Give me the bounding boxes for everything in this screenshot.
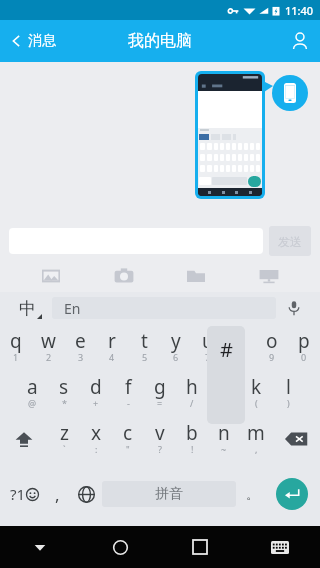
- staticText: 5: [142, 351, 148, 363]
- staticText: @: [28, 397, 37, 409]
- button[interactable]: q: [0, 324, 32, 370]
- button[interactable]: v: [144, 416, 176, 462]
- button[interactable]: w: [32, 324, 64, 370]
- staticText: z: [60, 420, 69, 446]
- button[interactable]: 中: [8, 292, 52, 324]
- button[interactable]: x: [80, 416, 112, 462]
- staticText: d: [90, 374, 102, 400]
- staticText: #: [220, 336, 233, 363]
- staticText: c: [123, 420, 133, 446]
- button[interactable]: Home: [80, 526, 160, 568]
- button[interactable]: Computer: [247, 260, 291, 292]
- button[interactable]: o: [256, 324, 288, 370]
- staticText: e: [75, 328, 86, 354]
- button[interactable]: 。: [236, 462, 268, 526]
- button[interactable]: a: [16, 370, 48, 416]
- staticText: u: [202, 328, 214, 354]
- staticText: o: [266, 328, 278, 354]
- staticText: 发送: [278, 234, 302, 249]
- staticText: w: [41, 328, 56, 354]
- button[interactable]: Gallery: [29, 260, 73, 292]
- staticText: 3: [78, 351, 84, 363]
- button[interactable]: 拼音: [102, 481, 236, 507]
- button[interactable]: k: [240, 370, 272, 416]
- button[interactable]: Device avatar: [272, 75, 308, 111]
- staticText: k: [251, 374, 262, 400]
- staticText: r: [108, 328, 116, 354]
- staticText: s: [59, 374, 69, 400]
- staticText: 1: [13, 351, 19, 363]
- button[interactable]: Backspace: [272, 416, 320, 462]
- button[interactable]: Camera: [102, 260, 146, 292]
- button[interactable]: m: [240, 416, 272, 462]
- staticText: *: [62, 397, 67, 409]
- staticText: v: [155, 420, 165, 446]
- button[interactable]: En: [52, 297, 276, 319]
- button[interactable]: h: [176, 370, 208, 416]
- button[interactable]: Change language: [70, 462, 102, 526]
- staticText: -: [127, 397, 130, 409]
- button[interactable]: n: [208, 416, 240, 462]
- staticText: !: [191, 443, 194, 455]
- staticText: /: [190, 397, 194, 409]
- button[interactable]: Hide keyboard: [0, 526, 80, 568]
- staticText: 中: [19, 298, 36, 319]
- button[interactable]: z: [48, 416, 80, 462]
- button[interactable]: Files: [174, 260, 218, 292]
- button[interactable]: Recent apps: [160, 526, 240, 568]
- button[interactable]: b: [176, 416, 208, 462]
- button[interactable]: l: [272, 370, 304, 416]
- staticText: 2: [46, 351, 52, 363]
- button[interactable]: f: [112, 370, 144, 416]
- button[interactable]: ,: [45, 462, 70, 526]
- staticText: 拼音: [155, 485, 183, 503]
- staticText: q: [10, 328, 22, 354]
- button[interactable]: e: [64, 324, 96, 370]
- staticText: l: [286, 374, 291, 400]
- button[interactable]: d: [80, 370, 112, 416]
- button[interactable]: y: [160, 324, 192, 370]
- staticText: p: [298, 328, 310, 354]
- button[interactable]: Enter: [268, 462, 316, 526]
- button[interactable]: u: [192, 324, 224, 370]
- button[interactable]: c: [112, 416, 144, 462]
- button[interactable]: i: [224, 324, 256, 370]
- staticText: g: [154, 374, 166, 400]
- staticText: y: [171, 328, 181, 354]
- button[interactable]: g: [144, 370, 176, 416]
- staticText: ,: [55, 483, 60, 506]
- staticText: 4: [109, 351, 115, 363]
- button[interactable]: 发送: [269, 226, 311, 256]
- button[interactable]: s: [48, 370, 80, 416]
- button[interactable]: p: [288, 324, 320, 370]
- button[interactable]: r: [96, 324, 128, 370]
- staticText: 我的电脑: [128, 31, 192, 51]
- staticText: =: [157, 397, 163, 409]
- button[interactable]: t: [128, 324, 160, 370]
- staticText: 6: [173, 351, 179, 363]
- staticText: m: [247, 420, 265, 446]
- staticText: En: [64, 299, 81, 318]
- staticText: ): [287, 397, 290, 409]
- staticText: 。: [246, 486, 259, 502]
- button[interactable]: Switch keyboard: [240, 526, 320, 568]
- staticText: 9: [269, 351, 275, 363]
- staticText: 消息: [28, 32, 56, 50]
- button[interactable]: Voice input: [276, 292, 312, 324]
- button[interactable]: Profile: [280, 20, 320, 62]
- button[interactable]: Shift: [0, 416, 48, 462]
- staticText: 0: [301, 351, 307, 363]
- button[interactable]: 消息: [0, 20, 66, 62]
- staticText: a: [27, 374, 38, 400]
- staticText: b: [186, 420, 198, 446]
- button[interactable]: ?1: [4, 462, 45, 526]
- staticText: ~: [221, 443, 227, 455]
- staticText: ,: [255, 443, 258, 455]
- button[interactable]: [195, 71, 265, 199]
